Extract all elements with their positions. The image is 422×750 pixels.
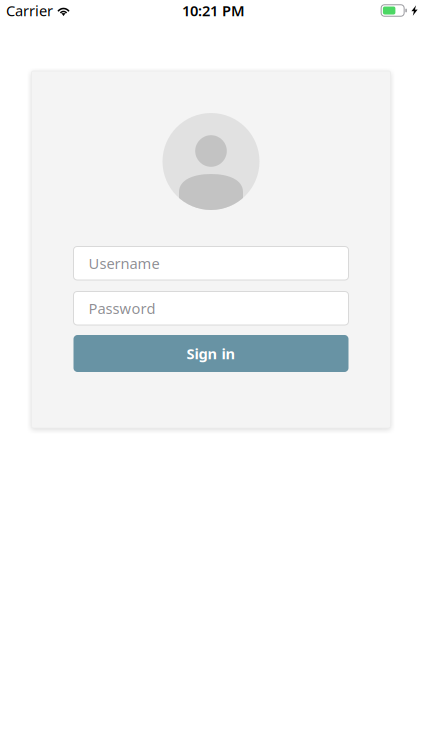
staticText: Carrier xyxy=(6,1,53,20)
staticText: 10:21 PM xyxy=(182,1,245,20)
staticText: Sign in xyxy=(186,344,235,363)
button[interactable]: Password xyxy=(73,291,348,325)
staticText: Username xyxy=(88,253,159,273)
button[interactable]: Sign in xyxy=(73,335,348,372)
button[interactable]: Username xyxy=(73,246,348,280)
staticText: Password xyxy=(88,298,155,318)
